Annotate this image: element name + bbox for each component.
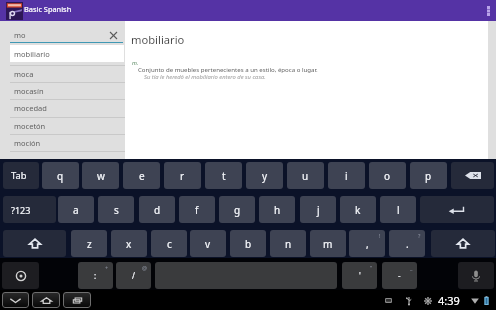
staticText: ,: [366, 237, 369, 251]
button[interactable]: moca: [0, 65, 125, 82]
staticText: a: [73, 203, 79, 217]
button[interactable]: v: [190, 230, 226, 257]
staticText: c: [167, 237, 172, 251]
button[interactable]: x: [111, 230, 147, 257]
button[interactable]: mocetón: [0, 117, 125, 134]
staticText: b: [245, 237, 252, 251]
staticText: moca: [14, 69, 34, 79]
button[interactable]: g: [219, 196, 255, 223]
staticText: .: [406, 237, 409, 251]
button[interactable]: b: [230, 230, 266, 257]
staticText: d: [154, 203, 161, 217]
button[interactable]: u: [287, 162, 324, 189]
button[interactable]: i: [328, 162, 365, 189]
staticText: h: [274, 203, 281, 217]
button[interactable]: f: [179, 196, 215, 223]
button[interactable]: j: [300, 196, 336, 223]
button[interactable]: Recent apps: [63, 292, 91, 308]
staticText: mobiliario: [131, 32, 185, 47]
button[interactable]: k: [340, 196, 376, 223]
button[interactable]: y: [246, 162, 283, 189]
staticText: mocedad: [14, 103, 47, 113]
staticText: s: [114, 203, 119, 217]
staticText: l: [397, 203, 400, 217]
button[interactable]: q: [42, 162, 79, 189]
staticText: 4:39: [438, 293, 460, 308]
staticText: n: [285, 237, 292, 251]
button[interactable]: s: [98, 196, 134, 223]
button[interactable]: Backspace: [451, 162, 494, 189]
button[interactable]: Back: [2, 292, 29, 308]
button[interactable]: m: [310, 230, 346, 257]
staticText: /: [132, 270, 135, 281]
button[interactable]: -: [382, 262, 417, 289]
button[interactable]: Tab: [3, 162, 39, 189]
button[interactable]: ?123: [3, 196, 56, 223]
button[interactable]: r: [164, 162, 201, 189]
staticText: Su tía le heredó el mobiliario entero de…: [144, 73, 266, 81]
button[interactable]: Clear search: [106, 27, 120, 43]
button[interactable]: h: [259, 196, 295, 223]
staticText: mocetón: [14, 121, 46, 131]
button[interactable]: Home: [32, 292, 60, 308]
button[interactable]: :: [78, 262, 113, 289]
staticText: :: [94, 270, 97, 281]
staticText: t: [222, 169, 226, 183]
staticText: +: [105, 264, 109, 271]
button[interactable]: /: [116, 262, 151, 289]
staticText: w: [97, 169, 105, 183]
button[interactable]: c: [151, 230, 187, 257]
staticText: i: [345, 169, 348, 183]
staticText: v: [205, 237, 211, 251]
staticText: Conjunto de muebles pertenecientes a un …: [138, 65, 318, 73]
staticText: q: [57, 169, 64, 183]
button[interactable]: Enter: [420, 196, 494, 223]
button[interactable]: ,: [349, 230, 385, 257]
staticText: e: [139, 169, 145, 183]
staticText: y: [262, 169, 268, 183]
button[interactable]: ': [342, 262, 377, 289]
staticText: u: [302, 169, 309, 183]
staticText: p: [425, 169, 432, 183]
button[interactable]: n: [270, 230, 306, 257]
button[interactable]: mobiliario: [10, 45, 124, 62]
button[interactable]: Shift: [431, 230, 495, 257]
button[interactable]: w: [82, 162, 119, 189]
button[interactable]: Keyboard settings: [2, 262, 39, 289]
staticText: ': [359, 270, 361, 281]
button[interactable]: moción: [0, 134, 125, 151]
staticText: Tab: [11, 169, 27, 182]
staticText: z: [87, 237, 92, 251]
button[interactable]: Shift: [3, 230, 66, 257]
button[interactable]: mocasín: [0, 82, 125, 99]
button[interactable]: d: [139, 196, 175, 223]
staticText: !: [379, 232, 381, 239]
button[interactable]: o: [369, 162, 406, 189]
button[interactable]: a: [58, 196, 94, 223]
staticText: k: [355, 203, 361, 217]
button[interactable]: mocedad: [0, 99, 125, 116]
staticText: _: [410, 264, 413, 271]
button[interactable]: Voice input: [458, 262, 494, 289]
staticText: ?: [418, 232, 421, 239]
staticText: g: [234, 203, 241, 217]
staticText: f: [195, 203, 199, 217]
button[interactable]: p: [410, 162, 447, 189]
button[interactable]: App icon: [6, 2, 23, 20]
staticText: m: [323, 237, 333, 251]
staticText: j: [317, 203, 320, 217]
button[interactable]: More options: [480, 0, 496, 21]
staticText: m.: [132, 59, 139, 67]
button[interactable]: .: [389, 230, 425, 257]
staticText: mo: [14, 30, 26, 40]
button[interactable]: z: [71, 230, 107, 257]
button[interactable]: l: [380, 196, 416, 223]
button[interactable]: e: [123, 162, 160, 189]
staticText: -: [398, 270, 401, 281]
staticText: mocasín: [14, 86, 44, 96]
staticText: @: [142, 264, 147, 271]
staticText: r: [180, 169, 185, 183]
staticText: Basic Spanish: [24, 4, 72, 14]
button[interactable]: t: [205, 162, 242, 189]
